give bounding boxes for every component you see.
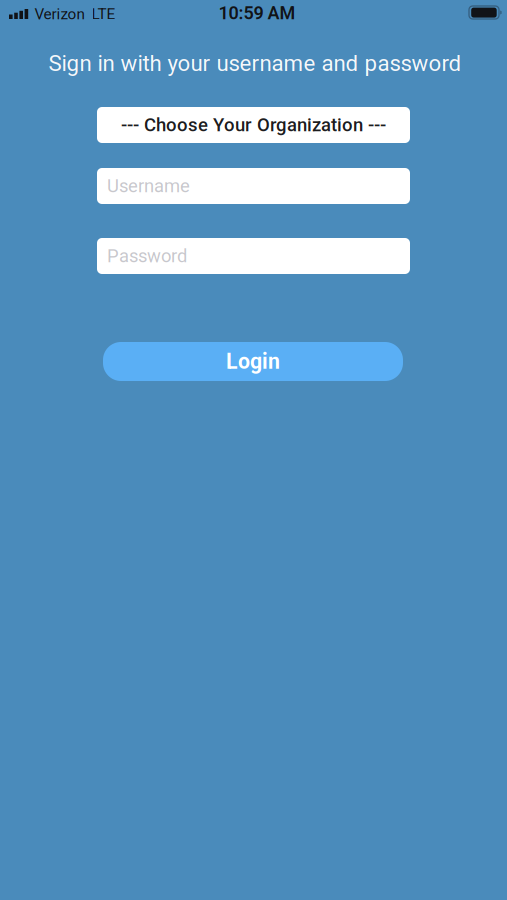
staticText: Verizon: [34, 5, 84, 23]
staticText: Password: [107, 245, 187, 267]
staticText: Username: [107, 175, 190, 197]
button[interactable]: Password: [97, 238, 410, 274]
staticText: Login: [226, 349, 280, 374]
button[interactable]: Login: [103, 342, 403, 381]
staticText: 10:59 AM: [218, 2, 295, 24]
button[interactable]: --- Choose Your Organization ---: [97, 107, 410, 143]
staticText: LTE: [91, 5, 115, 23]
staticText: --- Choose Your Organization ---: [121, 114, 386, 136]
button[interactable]: Username: [97, 168, 410, 204]
staticText: Sign in with your username and password: [48, 50, 461, 77]
